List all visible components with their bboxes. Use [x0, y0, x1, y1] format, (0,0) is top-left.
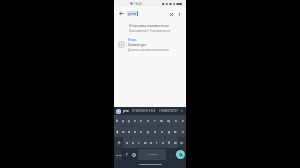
staticText: ш: [160, 119, 163, 123]
button[interactable]: щ: [165, 115, 172, 126]
button[interactable]: к: [132, 115, 138, 126]
staticText: н: [147, 119, 149, 123]
button[interactable]: н: [144, 115, 151, 126]
staticText: с: [138, 141, 140, 145]
button[interactable]: Emoji: [131, 149, 136, 160]
button[interactable]: и: [148, 137, 154, 148]
staticText: х: [182, 119, 184, 123]
staticText: уста: [128, 11, 136, 16]
button[interactable]: ц: [120, 115, 126, 126]
staticText: Установка неизвестных приложений: [129, 23, 182, 28]
button[interactable]: УСТАНОВЛЕННЫЕ: [131, 108, 157, 114]
button[interactable]: Backspace: [178, 137, 186, 148]
staticText: в: [128, 130, 130, 134]
staticText: г: [154, 119, 156, 123]
button[interactable]: More options: [175, 10, 183, 18]
staticText: ь: [162, 141, 164, 145]
button[interactable]: е: [138, 115, 144, 126]
button[interactable]: ч: [130, 137, 136, 148]
button[interactable]: ж: [172, 126, 179, 137]
button[interactable]: х: [179, 115, 186, 126]
staticText: д: [168, 130, 170, 134]
button[interactable]: Shift: [114, 137, 123, 148]
button[interactable]: р: [144, 126, 151, 137]
staticText: б: [168, 141, 170, 145]
staticText: ы: [122, 130, 125, 134]
button[interactable]: УНИВЕРСИТЕТ: [158, 108, 179, 114]
button[interactable]: з: [172, 115, 179, 126]
staticText: к: [134, 119, 136, 123]
button[interactable]: Back: [117, 9, 126, 18]
staticText: э: [182, 130, 184, 134]
staticText: ч: [132, 141, 134, 145]
button[interactable]: Space: [138, 149, 166, 160]
staticText: л: [161, 130, 163, 134]
staticText: .: [170, 153, 171, 157]
button[interactable]: Search: [176, 150, 185, 159]
button[interactable]: л: [158, 126, 165, 137]
staticText: з: [175, 119, 177, 123]
button[interactable]: б: [166, 137, 172, 148]
button[interactable]: ь: [160, 137, 166, 148]
staticText: ?123: [116, 153, 122, 156]
button[interactable]: г: [151, 115, 158, 126]
staticText: й: [116, 119, 118, 123]
button[interactable]: в: [126, 126, 132, 137]
staticText: Язык: [128, 37, 137, 42]
button[interactable]: а: [132, 126, 138, 137]
button[interactable]: с: [136, 137, 142, 148]
button[interactable]: э: [179, 126, 186, 137]
staticText: щ: [167, 119, 170, 123]
staticText: ц: [122, 119, 124, 123]
button[interactable]: ?: [124, 149, 129, 160]
staticText: Приложения • Специальные доступы: [129, 29, 182, 33]
button[interactable]: у: [126, 115, 132, 126]
button[interactable]: Установка неизвестных приложений: [114, 20, 186, 35]
staticText: УСТАНОВЛЕННЫЕ: [132, 109, 156, 113]
button[interactable]: уста: [122, 108, 130, 114]
button[interactable]: Clear: [167, 10, 175, 18]
staticText: т: [156, 141, 158, 145]
staticText: и: [150, 141, 152, 145]
staticText: 16:45: [134, 2, 142, 6]
button[interactable]: п: [138, 126, 144, 137]
button[interactable]: о: [151, 126, 158, 137]
staticText: Клавиатуры: [128, 43, 147, 47]
staticText: у: [128, 119, 130, 123]
staticText: р: [147, 130, 149, 134]
staticText: Русский: [148, 153, 157, 156]
staticText: м: [144, 141, 147, 145]
staticText: п: [140, 130, 142, 134]
button[interactable]: т: [154, 137, 160, 148]
button[interactable]: ы: [120, 126, 126, 137]
staticText: ж: [174, 130, 177, 134]
button[interactable]: м: [142, 137, 148, 148]
button[interactable]: д: [165, 126, 172, 137]
staticText: ф: [116, 130, 119, 134]
button[interactable]: я: [123, 137, 130, 148]
staticText: ю: [174, 141, 177, 145]
button[interactable]: Expand suggestions: [179, 108, 185, 114]
button[interactable]: ю: [172, 137, 178, 148]
button[interactable]: Язык: [114, 35, 186, 54]
staticText: ?: [126, 153, 128, 157]
button[interactable]: ф: [114, 126, 120, 137]
button[interactable]: ш: [158, 115, 165, 126]
staticText: е: [140, 119, 142, 123]
button[interactable]: ?123: [115, 149, 122, 160]
staticText: уста: [123, 109, 129, 113]
staticText: о: [154, 130, 156, 134]
button[interactable]: Google: [116, 109, 121, 114]
staticText: УНИВЕРСИТЕТ: [159, 109, 178, 113]
button[interactable]: .: [168, 149, 173, 160]
button[interactable]: уста: [127, 11, 138, 16]
staticText: Данные для автозаполнения словарей: [128, 48, 182, 52]
staticText: я: [126, 141, 128, 145]
button[interactable]: й: [114, 115, 120, 126]
staticText: а: [134, 130, 136, 134]
